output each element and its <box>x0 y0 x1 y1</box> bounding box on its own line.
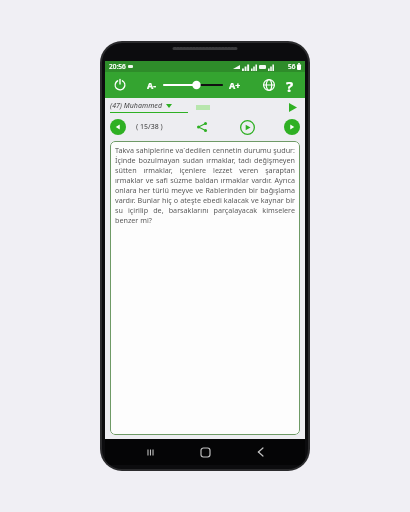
button[interactable]: Takva sahiplerine va`dedilen cennetin du… <box>110 141 300 435</box>
staticText: Takva sahiplerine va`dedilen cennetin du… <box>115 145 295 225</box>
button[interactable]: Font size slider <box>164 78 222 92</box>
button[interactable]: Share <box>194 119 210 135</box>
button[interactable]: Help <box>281 76 299 94</box>
staticText: A+ <box>229 79 241 91</box>
button[interactable]: Power <box>111 76 129 94</box>
button[interactable]: Next <box>284 119 300 135</box>
staticText: ( 15/38 ) <box>136 122 163 132</box>
staticText: 56 <box>288 62 296 71</box>
button[interactable]: Previous <box>110 119 126 135</box>
button[interactable]: Recents <box>140 442 160 462</box>
staticText: A- <box>147 79 157 91</box>
button[interactable]: (47) Muhammed <box>110 101 188 113</box>
button[interactable]: A- <box>145 77 159 93</box>
staticText: 20:56 <box>109 62 126 71</box>
button[interactable]: Back <box>250 442 270 462</box>
button[interactable]: Play all <box>286 100 300 114</box>
staticText: (47) Muhammed <box>110 101 163 111</box>
button[interactable]: A+ <box>227 77 243 93</box>
button[interactable]: Language <box>260 76 278 94</box>
button[interactable]: Home <box>195 442 215 462</box>
button[interactable]: ( 15/38 ) <box>134 122 165 132</box>
staticText: ? <box>286 76 294 94</box>
button[interactable]: Play <box>238 118 256 136</box>
